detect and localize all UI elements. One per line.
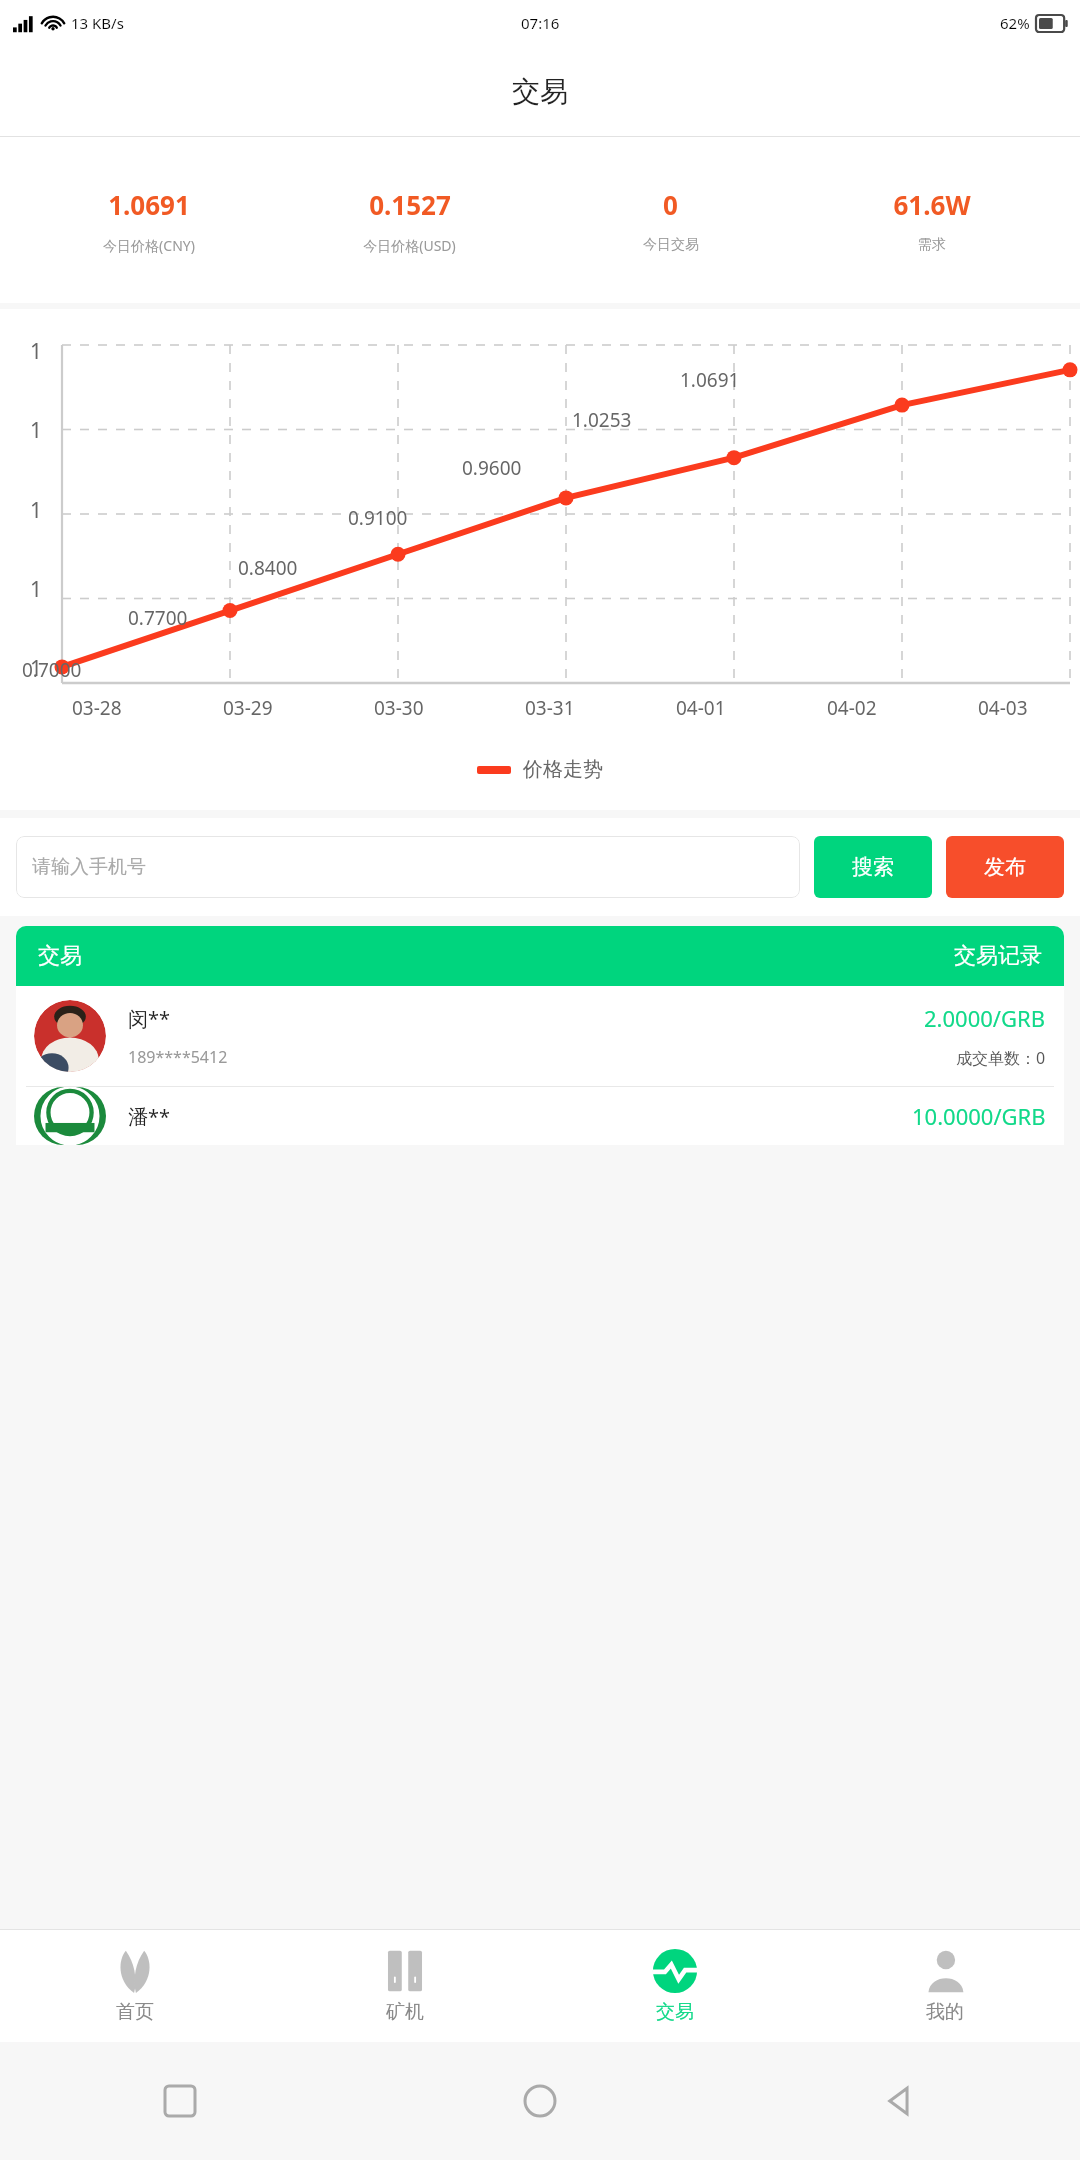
staticText: 闵** xyxy=(128,1005,171,1032)
staticText: 1 xyxy=(30,575,43,604)
button[interactable]: 我的 xyxy=(810,1930,1080,2042)
staticText: 0.8400 xyxy=(238,555,298,581)
staticText: 今日价格(USD) xyxy=(363,236,456,255)
staticText: 13 KB/s xyxy=(71,13,124,33)
button[interactable]: 交易 xyxy=(540,1930,810,2042)
staticText: 0.7700 xyxy=(128,605,188,631)
staticText: 1.0253 xyxy=(572,407,632,433)
staticText: 搜索 xyxy=(852,854,894,880)
staticText: 07:16 xyxy=(521,13,560,33)
staticText: 1 xyxy=(30,496,43,525)
staticText: 03-28 xyxy=(72,695,122,721)
staticText: 189****5412 xyxy=(128,1046,228,1068)
staticText: 交易 xyxy=(656,2000,694,2024)
staticText: 1 xyxy=(30,654,43,683)
staticText: 0.7000 xyxy=(22,657,82,683)
staticText: 10.0000/GRB xyxy=(912,1101,1046,1131)
staticText: 我的 xyxy=(926,2000,964,2024)
staticText: 0.9600 xyxy=(462,455,522,481)
staticText: 61.6W xyxy=(893,187,971,222)
staticText: 0 xyxy=(663,187,678,222)
staticText: 2.0000/GRB xyxy=(924,1003,1046,1033)
staticText: 今日交易 xyxy=(643,236,699,254)
staticText: 1.0691 xyxy=(680,367,740,393)
staticText: 04-03 xyxy=(978,695,1028,721)
staticText: 0.1527 xyxy=(369,187,451,222)
button[interactable]: 闵** xyxy=(16,986,1064,1086)
staticText: 价格走势 xyxy=(523,757,603,782)
button[interactable]: 请输入手机号 xyxy=(16,836,800,898)
staticText: 04-01 xyxy=(676,695,726,721)
other: Home xyxy=(523,2084,557,2118)
staticText: 0.9100 xyxy=(348,505,408,531)
staticText: 04-02 xyxy=(827,695,877,721)
staticText: 矿机 xyxy=(386,2000,424,2024)
staticText: 首页 xyxy=(116,2000,154,2024)
staticText: 交易 xyxy=(512,74,568,109)
staticText: 1 xyxy=(30,337,43,366)
staticText: 需求 xyxy=(918,236,946,254)
other: Back xyxy=(884,2085,916,2117)
button[interactable]: 矿机 xyxy=(270,1930,540,2042)
button[interactable]: 发布 xyxy=(946,836,1064,898)
staticText: 03-29 xyxy=(223,695,273,721)
staticText: 发布 xyxy=(984,854,1026,880)
staticText: 成交单数：0 xyxy=(956,1047,1046,1069)
staticText: 交易记录 xyxy=(954,942,1042,970)
staticText: 交易 xyxy=(38,942,82,970)
other: Recents xyxy=(165,2086,195,2116)
staticText: 62% xyxy=(1000,13,1030,33)
button[interactable]: 搜索 xyxy=(814,836,932,898)
staticText: 请输入手机号 xyxy=(32,855,146,879)
staticText: 03-31 xyxy=(525,695,575,721)
staticText: 1.0691 xyxy=(108,187,190,222)
button[interactable]: 交易 xyxy=(16,926,1064,986)
staticText: 03-30 xyxy=(374,695,424,721)
staticText: 今日价格(CNY) xyxy=(103,236,195,255)
staticText: 1 xyxy=(30,416,43,445)
button[interactable]: 首页 xyxy=(0,1930,270,2042)
button[interactable]: 潘** xyxy=(16,1087,1064,1145)
staticText: 潘** xyxy=(128,1103,912,1130)
